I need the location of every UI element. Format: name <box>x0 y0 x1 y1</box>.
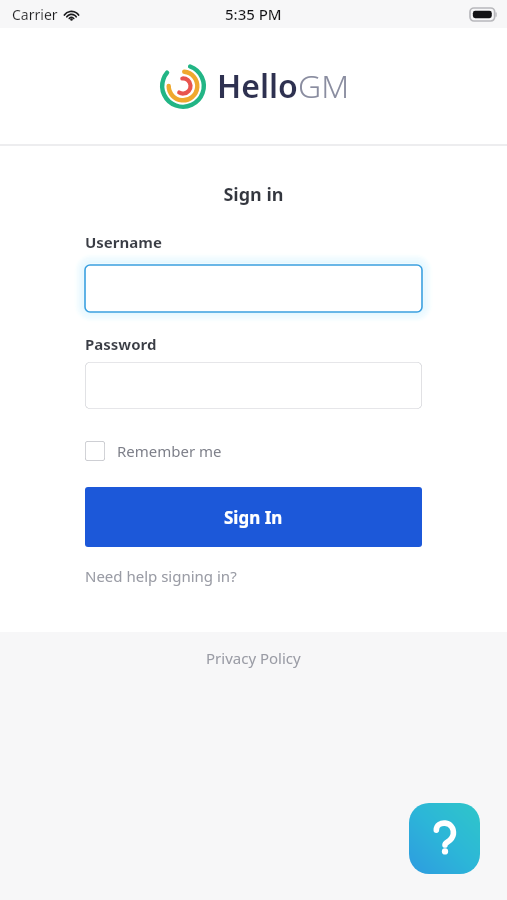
staticText: Hello <box>217 64 298 108</box>
staticText: Privacy Policy <box>206 648 301 668</box>
button[interactable] <box>85 362 422 409</box>
button[interactable]: Help <box>409 803 480 874</box>
button[interactable]: Need help signing in? <box>85 566 237 586</box>
button[interactable]: Remember me <box>85 439 222 463</box>
staticText: GM <box>298 64 350 108</box>
staticText: Remember me <box>117 441 222 461</box>
button[interactable] <box>85 260 422 316</box>
staticText: Password <box>85 334 157 354</box>
button[interactable]: Privacy Policy <box>196 642 311 674</box>
staticText: Need help signing in? <box>85 566 237 586</box>
button[interactable]: Sign In <box>85 487 422 547</box>
staticText: Sign in <box>0 182 507 207</box>
staticText: 5:35 PM <box>225 4 282 24</box>
staticText: Carrier <box>12 5 58 24</box>
staticText: Username <box>85 232 162 252</box>
staticText: Sign In <box>224 506 283 529</box>
